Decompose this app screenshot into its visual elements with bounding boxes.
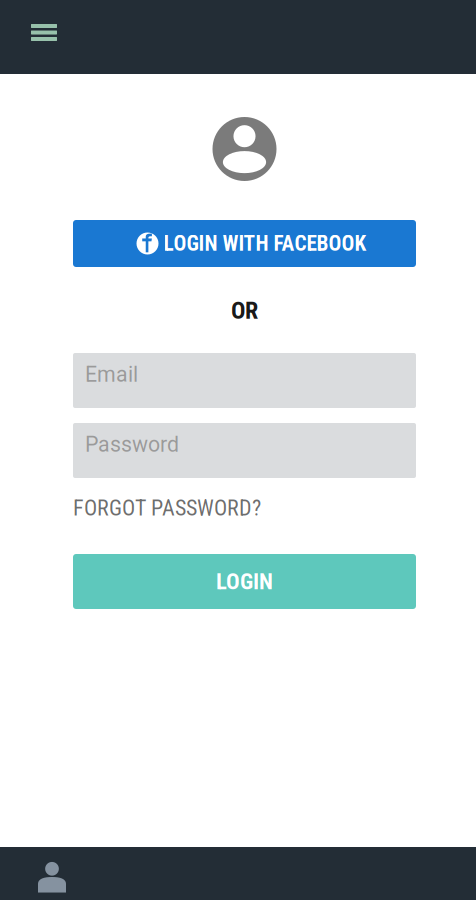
staticText: FORGOT PASSWORD? [73, 495, 261, 521]
button[interactable]: Profile [0, 846, 84, 900]
button[interactable]: FORGOT PASSWORD? [73, 497, 416, 519]
staticText: LOGIN [216, 568, 273, 595]
button[interactable]: LOGIN [73, 554, 416, 609]
staticText: Password [85, 432, 179, 457]
staticText: OR [231, 296, 258, 324]
staticText: Email [85, 362, 138, 387]
staticText: LOGIN WITH FACEBOOK [163, 231, 366, 256]
button[interactable]: LOGIN WITH FACEBOOK [73, 220, 416, 267]
button[interactable]: Menu [0, 0, 75, 74]
